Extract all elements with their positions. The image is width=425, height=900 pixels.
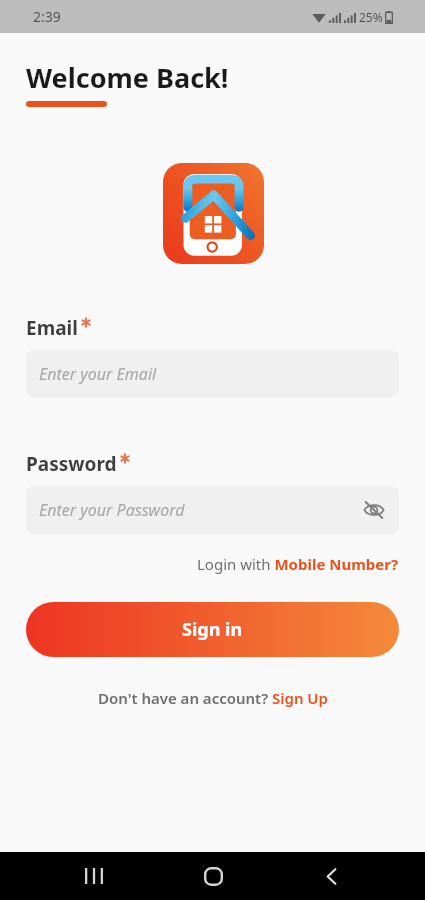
button[interactable]: Enter your Password — [26, 486, 399, 534]
button[interactable]: Sign in — [26, 602, 399, 657]
staticText: Password — [26, 451, 117, 477]
button[interactable]: Don't have an account? Sign Up — [98, 688, 328, 708]
staticText: Sign in — [182, 617, 243, 642]
staticText: 2:39 — [33, 7, 61, 26]
staticText: 25% — [359, 9, 383, 25]
staticText: Enter your Password — [39, 499, 185, 521]
staticText: Login with Mobile Number? — [197, 554, 399, 574]
button[interactable]: Recent apps — [70, 852, 118, 900]
button[interactable]: Back — [307, 852, 355, 900]
staticText: Welcome Back! — [26, 59, 229, 96]
button[interactable]: Enter your Email — [26, 350, 399, 397]
button[interactable]: Home — [189, 852, 237, 900]
button[interactable]: Toggle password visibility — [359, 495, 389, 525]
button[interactable]: Login with Mobile Number? — [197, 554, 399, 574]
staticText: Email — [26, 315, 78, 341]
staticText: Don't have an account? Sign Up — [98, 688, 328, 708]
staticText: Enter your Email — [39, 363, 157, 385]
